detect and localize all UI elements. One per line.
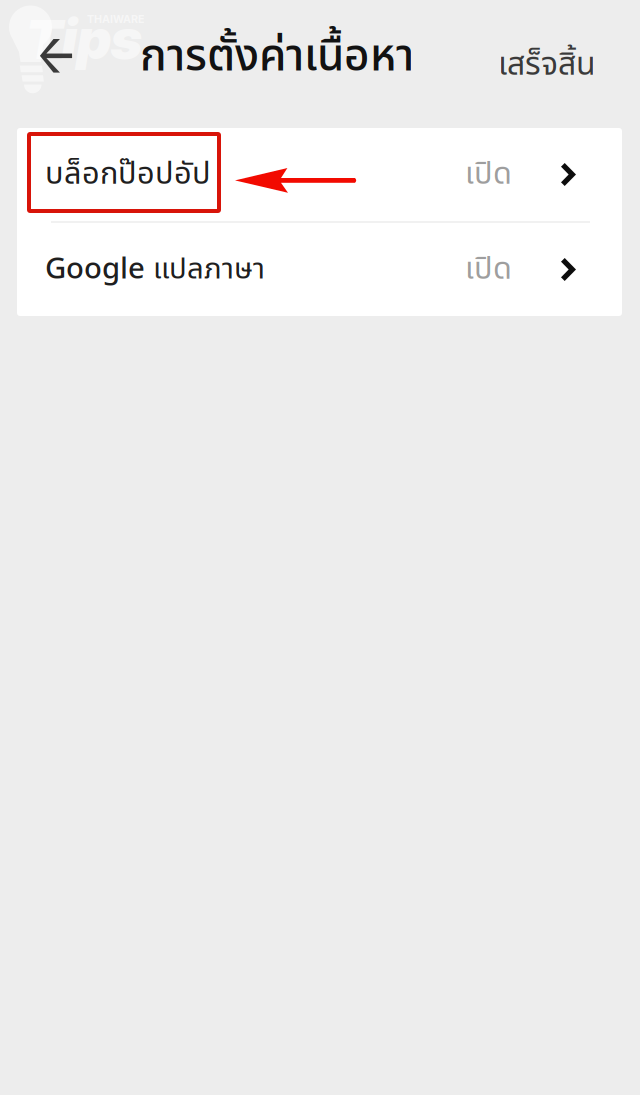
staticText: เปิด — [465, 246, 512, 293]
staticText: การตั้งค่าเนื้อหา — [140, 24, 414, 90]
staticText: Google แปลภาษา — [45, 248, 265, 291]
staticText: Tips — [26, 6, 142, 72]
button[interactable]: Google แปลภาษา — [17, 222, 622, 316]
staticText: บล็อกป๊อปอัป — [45, 151, 211, 198]
button[interactable]: บล็อกป๊อปอัป — [17, 127, 622, 221]
staticText: เปิด — [465, 151, 512, 198]
button[interactable]: เสร็จสิ้น — [0, 0, 640, 1095]
button[interactable]: Back — [0, 0, 640, 1095]
staticText: เสร็จสิ้น — [498, 41, 596, 89]
staticText: THAIWARE — [87, 12, 144, 25]
